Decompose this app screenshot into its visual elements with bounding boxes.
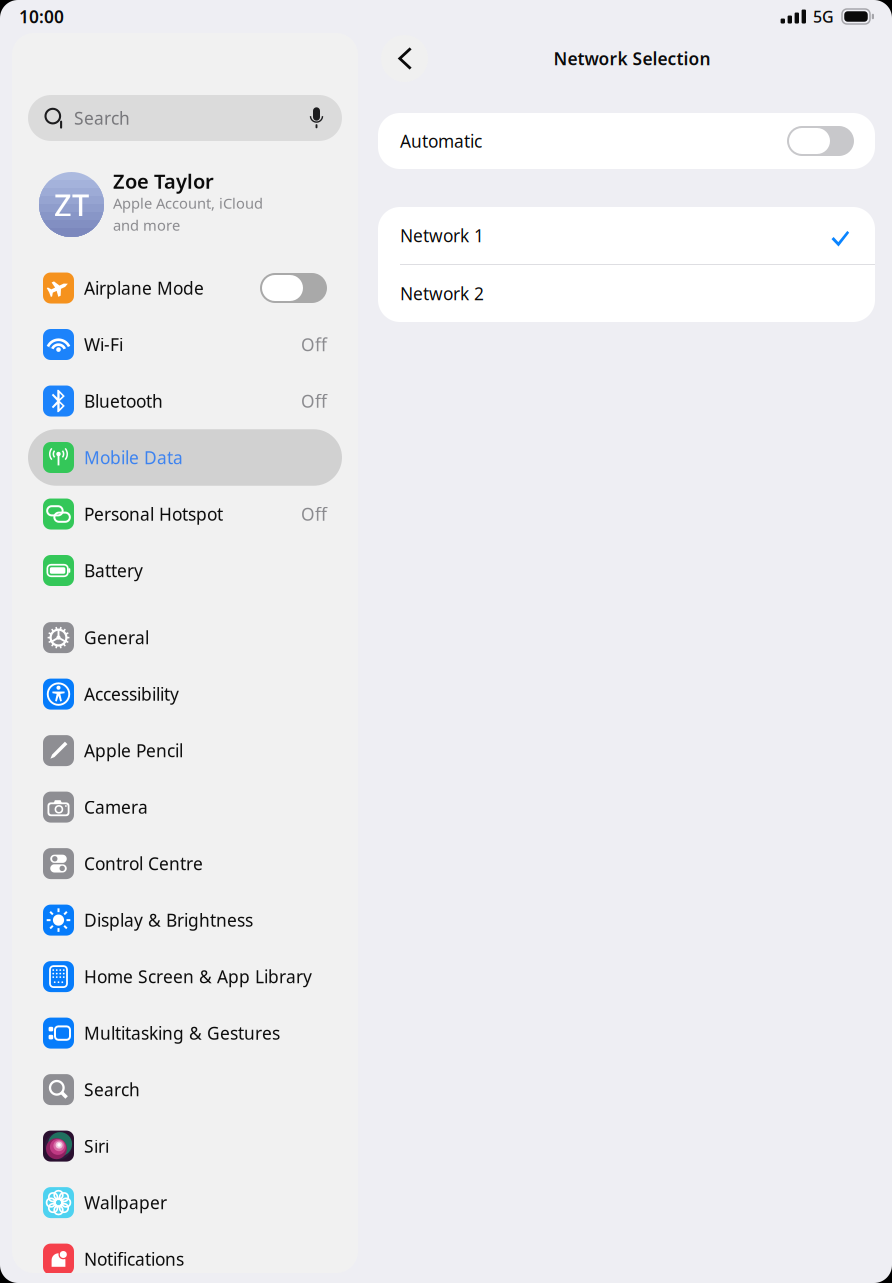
staticText: Camera <box>84 796 148 819</box>
staticText: Off <box>301 333 327 356</box>
staticText: Network 2 <box>400 282 484 305</box>
staticText: General <box>84 626 149 649</box>
staticText: Airplane Mode <box>84 276 204 299</box>
staticText: Wi-Fi <box>84 333 123 356</box>
staticText: Network 1 <box>400 224 484 247</box>
staticText: Apple Pencil <box>84 739 183 762</box>
button[interactable]: Airplane Mode <box>28 260 342 316</box>
staticText: Display & Brightness <box>84 909 253 932</box>
button[interactable]: Multitasking & Gestures <box>28 1005 342 1061</box>
staticText: 5G <box>813 6 834 27</box>
staticText: Accessibility <box>84 683 179 706</box>
button[interactable]: Bluetooth <box>28 373 342 429</box>
staticText: Network Selection <box>553 47 710 70</box>
button[interactable]: Personal Hotspot <box>28 486 342 542</box>
button[interactable]: Wallpaper <box>28 1174 342 1231</box>
staticText: Siri <box>84 1135 109 1158</box>
staticText: 10:00 <box>19 5 64 28</box>
button[interactable]: ZT <box>28 167 342 242</box>
staticText: Search <box>74 106 130 129</box>
staticText: Off <box>301 389 327 412</box>
button[interactable]: Battery <box>28 542 342 599</box>
staticText: and more <box>113 215 180 235</box>
staticText: Zoe Taylor <box>113 168 214 194</box>
button[interactable]: Display & Brightness <box>28 892 342 948</box>
button[interactable]: Network 2 <box>378 265 875 322</box>
button[interactable]: Control Centre <box>28 835 342 892</box>
staticText: Mobile Data <box>84 446 183 469</box>
button[interactable]: General <box>28 609 342 666</box>
staticText: Multitasking & Gestures <box>84 1022 280 1045</box>
staticText: Battery <box>84 559 143 582</box>
staticText: Off <box>301 502 327 525</box>
button[interactable]: Accessibility <box>28 666 342 722</box>
staticText: Apple Account, iCloud <box>113 193 263 213</box>
staticText: Wallpaper <box>84 1191 167 1214</box>
button[interactable]: Siri <box>28 1118 342 1174</box>
staticText: Notifications <box>84 1248 184 1271</box>
button[interactable]: Camera <box>28 779 342 835</box>
button[interactable]: Back <box>381 35 428 82</box>
staticText: Search <box>84 1078 140 1101</box>
button[interactable]: Apple Pencil <box>28 722 342 779</box>
button[interactable]: Home Screen & App Library <box>28 948 342 1005</box>
button[interactable]: Network 1 <box>378 207 875 264</box>
button[interactable]: Notifications <box>28 1231 342 1283</box>
staticText: Bluetooth <box>84 389 163 412</box>
button[interactable]: Mobile Data <box>28 429 342 486</box>
staticText: Personal Hotspot <box>84 502 223 525</box>
staticText: Automatic <box>400 129 482 152</box>
staticText: Home Screen & App Library <box>84 965 312 988</box>
button[interactable]: Search <box>28 95 342 141</box>
button[interactable]: Search <box>28 1061 342 1118</box>
staticText: Control Centre <box>84 852 203 875</box>
button[interactable]: Wi-Fi <box>28 316 342 373</box>
staticText: ZT <box>54 184 89 225</box>
